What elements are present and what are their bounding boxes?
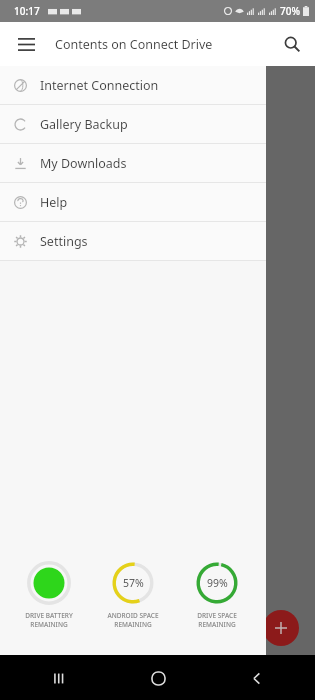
- staticText: Help: [40, 194, 68, 211]
- button[interactable]: Home: [139, 659, 177, 697]
- button[interactable]: DRIVE BATTERY: [8, 561, 90, 629]
- button[interactable]: Back: [237, 659, 275, 697]
- staticText: REMAINING: [198, 620, 236, 629]
- button[interactable]: My Downloads: [0, 144, 266, 182]
- button[interactable]: Open navigation drawer: [6, 24, 46, 64]
- staticText: DRIVE SPACE: [197, 611, 237, 620]
- button[interactable]: Help: [0, 183, 266, 221]
- button[interactable]: Search: [272, 24, 312, 64]
- staticText: REMAINING: [114, 620, 152, 629]
- button[interactable]: Add: [263, 610, 299, 646]
- button[interactable]: Internet Connection: [0, 66, 266, 104]
- staticText: Gallery Backup: [40, 116, 128, 133]
- staticText: 57%: [123, 576, 144, 590]
- button[interactable]: Gallery Backup: [0, 105, 266, 143]
- button[interactable]: Settings: [0, 222, 266, 260]
- staticText: Contents on Connect Drive: [55, 36, 213, 53]
- staticText: ANDROID SPACE: [107, 611, 159, 620]
- staticText: Internet Connection: [40, 77, 159, 94]
- button[interactable]: Recent apps: [40, 659, 78, 697]
- staticText: Settings: [40, 233, 88, 250]
- staticText: My Downloads: [40, 155, 127, 172]
- staticText: 10:17: [14, 4, 40, 18]
- button[interactable]: 99%: [176, 561, 258, 629]
- button[interactable]: Close drawer: [266, 66, 315, 655]
- staticText: 70%: [280, 4, 300, 18]
- button[interactable]: 57%: [92, 561, 174, 629]
- staticText: DRIVE BATTERY: [25, 611, 73, 620]
- staticText: 99%: [207, 576, 228, 590]
- staticText: REMAINING: [30, 620, 68, 629]
